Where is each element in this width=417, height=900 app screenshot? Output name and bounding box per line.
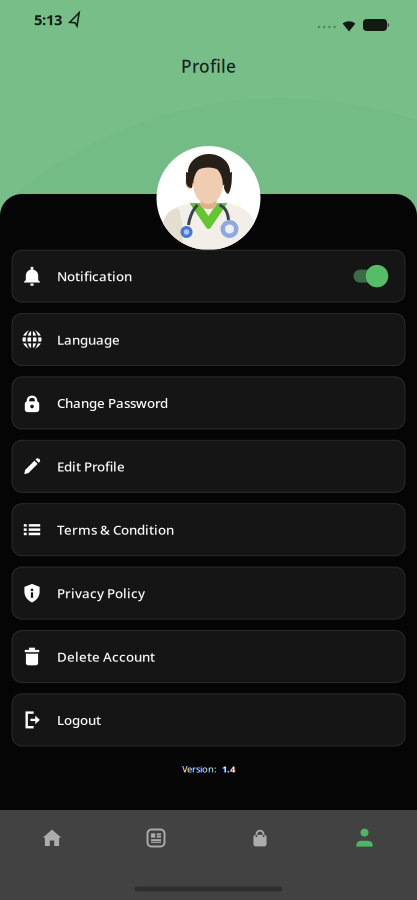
staticText: Profile <box>181 54 236 77</box>
staticText: 1.4 <box>222 763 235 775</box>
staticText: Language <box>57 331 120 348</box>
staticText: Delete Account <box>57 648 155 665</box>
button[interactable] <box>312 810 417 866</box>
staticText: 5:13 <box>34 10 62 29</box>
staticText: Version: <box>182 763 217 775</box>
button[interactable]: Notification <box>12 250 405 302</box>
button[interactable]: Privacy Policy <box>12 567 405 619</box>
button[interactable] <box>0 810 104 866</box>
button[interactable] <box>208 810 312 866</box>
button[interactable]: Edit Profile <box>12 440 405 492</box>
button[interactable] <box>104 810 208 866</box>
staticText: Logout <box>57 711 101 729</box>
button[interactable]: Language <box>12 313 405 365</box>
staticText: Edit Profile <box>57 457 125 475</box>
button[interactable] <box>352 264 388 288</box>
staticText: Notification <box>57 267 132 285</box>
button[interactable]: Terms & Condition <box>12 504 405 556</box>
button[interactable]: Logout <box>12 694 405 746</box>
staticText: Terms & Condition <box>57 521 174 538</box>
staticText: Change Password <box>57 394 168 412</box>
button[interactable]: Change Password <box>12 377 405 429</box>
staticText: Privacy Policy <box>57 584 145 602</box>
button[interactable]: Delete Account <box>12 630 405 682</box>
